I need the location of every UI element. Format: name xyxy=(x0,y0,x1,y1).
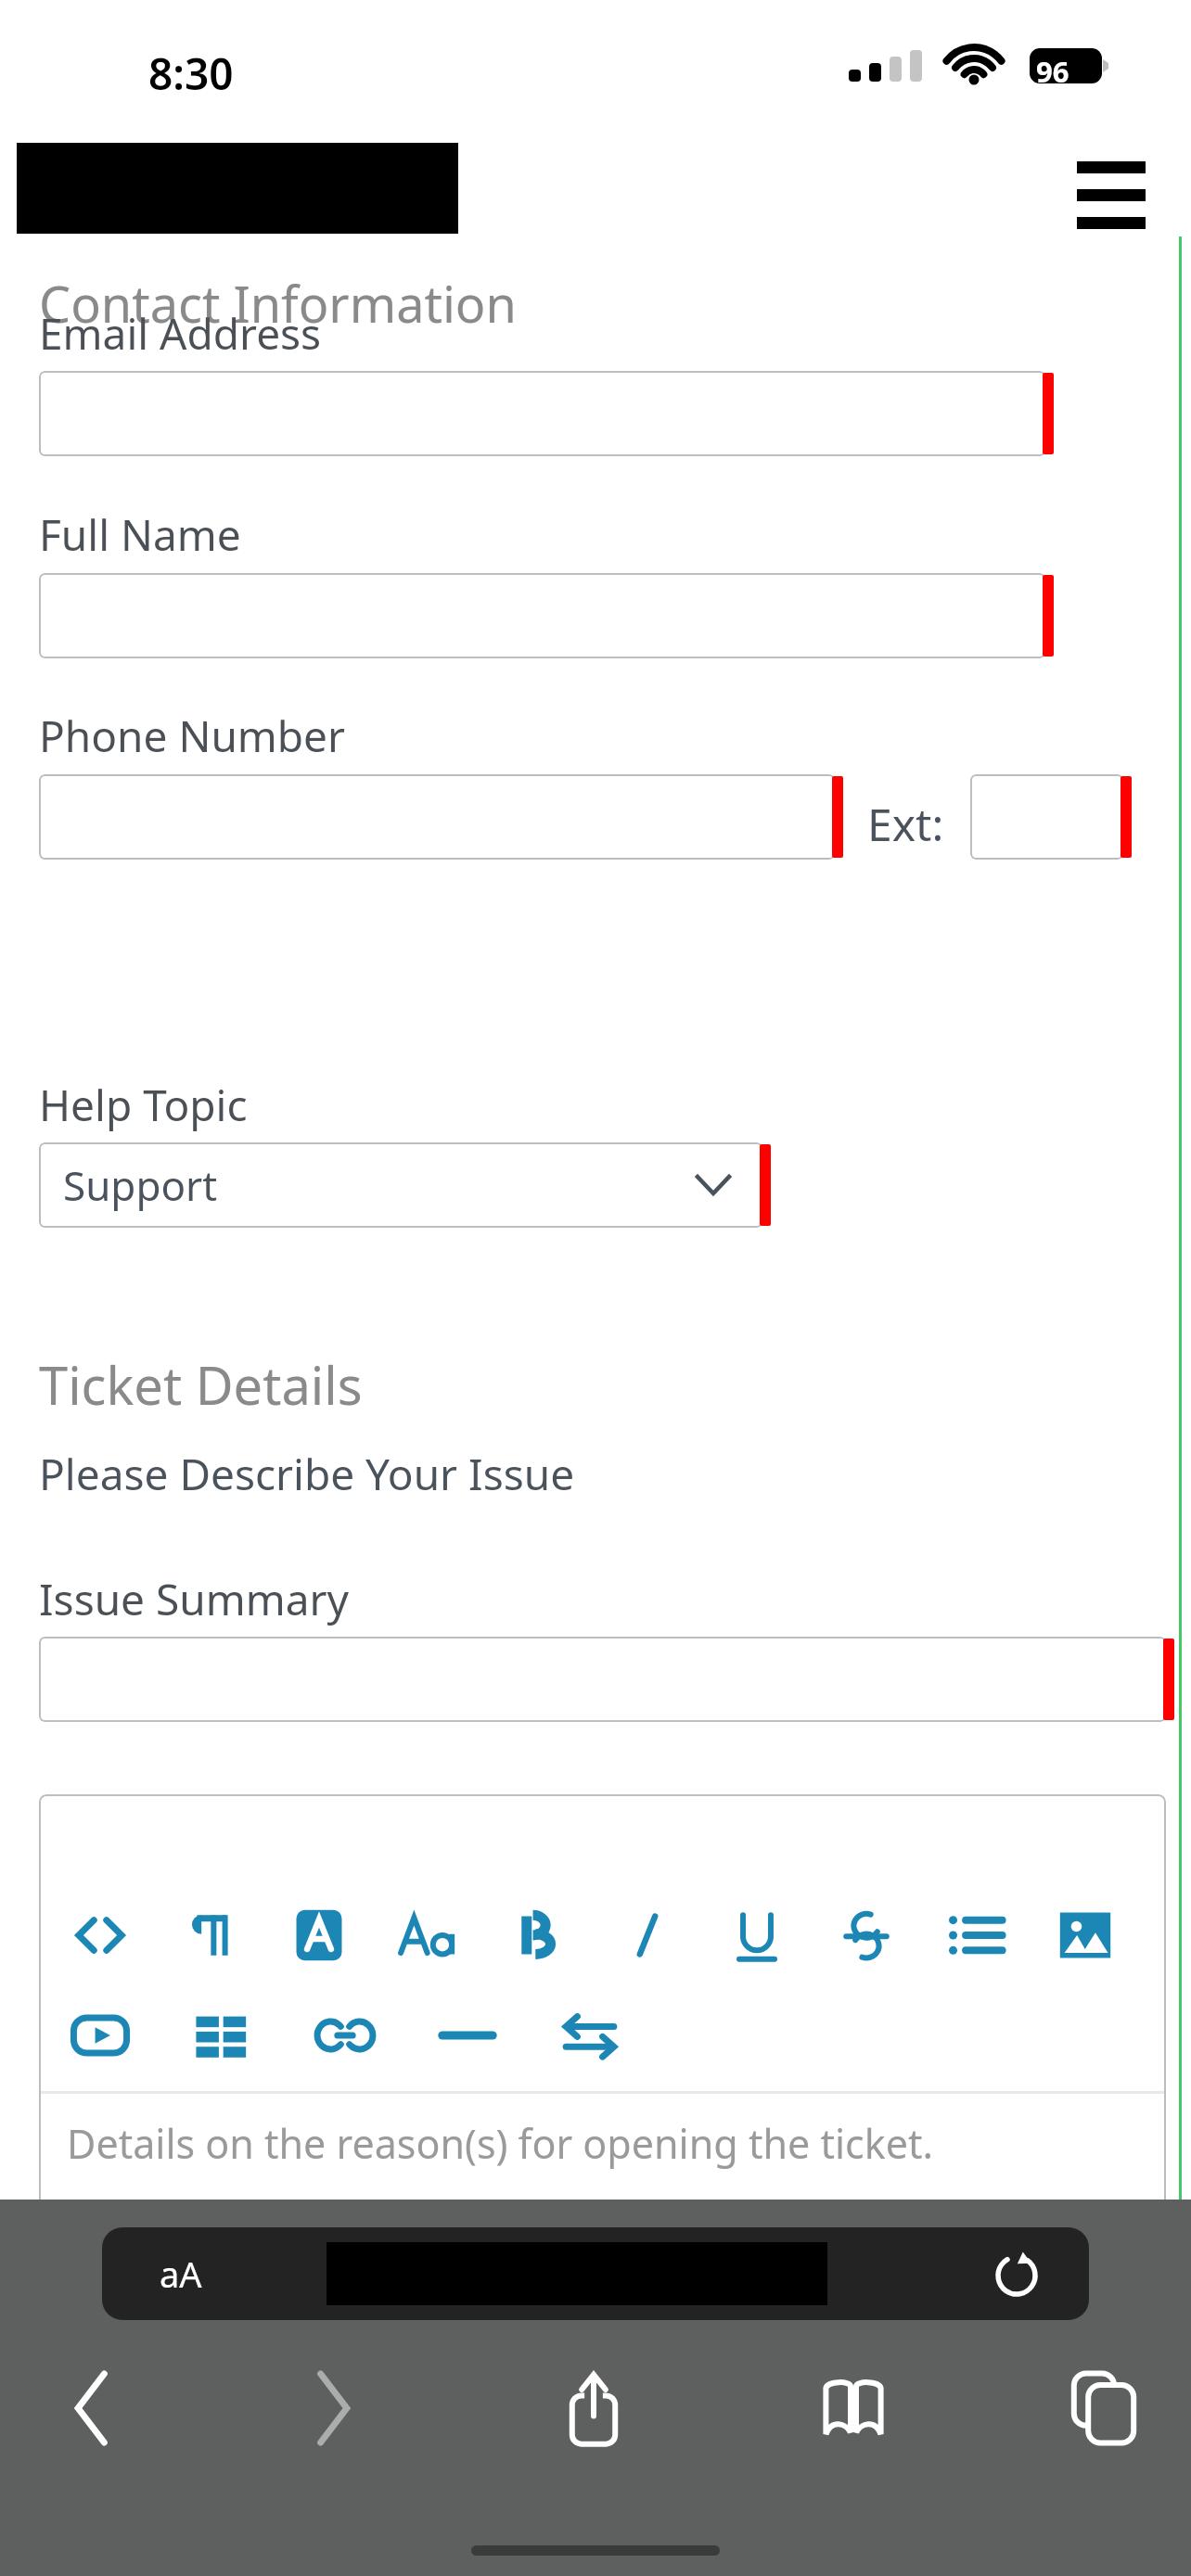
button[interactable] xyxy=(39,774,846,860)
staticText: Details on the reason(s) for opening the… xyxy=(67,2116,933,2171)
button[interactable]: Share xyxy=(519,2348,668,2468)
staticText: Ticket Details xyxy=(39,1349,363,1420)
staticText: 8:30 xyxy=(148,45,234,103)
button[interactable]: Bulleted list xyxy=(931,1891,1020,1980)
staticText: Help Topic xyxy=(39,1076,248,1134)
button[interactable]: Insert image xyxy=(1041,1891,1130,1980)
button[interactable]: Italic xyxy=(603,1891,692,1980)
staticText: Contact Information xyxy=(39,269,517,338)
staticText: Email Address xyxy=(39,304,322,363)
button[interactable]: Details on the reason(s) for opening the… xyxy=(39,2094,1166,2200)
button[interactable]: Undo / redo xyxy=(545,1991,634,2080)
button[interactable]: Back xyxy=(19,2348,167,2468)
button[interactable]: Insert link xyxy=(301,1991,390,2080)
staticText: aA xyxy=(160,2250,202,2298)
button[interactable]: aA xyxy=(102,2227,1089,2320)
staticText: Ext: xyxy=(867,794,944,854)
button[interactable]: Insert table xyxy=(178,1991,267,2080)
button[interactable] xyxy=(39,1637,1177,1722)
staticText: Please Describe Your Issue xyxy=(39,1445,575,1503)
button[interactable]: Forward xyxy=(258,2348,406,2468)
button[interactable]: Text color xyxy=(275,1891,364,1980)
button[interactable]: Menu xyxy=(1057,145,1165,230)
other: Reload xyxy=(989,2246,1044,2302)
button[interactable] xyxy=(39,573,1057,658)
button[interactable]: Bold xyxy=(493,1891,583,1980)
staticText: Phone Number xyxy=(39,707,346,765)
button[interactable]: Tabs xyxy=(1030,2348,1178,2468)
staticText: Support xyxy=(63,1157,218,1213)
button[interactable] xyxy=(39,371,1057,456)
button[interactable]: Insert video xyxy=(56,1991,145,2080)
button[interactable]: Horizontal line xyxy=(423,1991,512,2080)
button[interactable]: Bookmarks xyxy=(779,2348,928,2468)
staticText: Issue Summary xyxy=(39,1570,349,1628)
button[interactable]: Code view xyxy=(56,1891,145,1980)
button[interactable]: Strikethrough xyxy=(822,1891,911,1980)
button[interactable]: Paragraph format xyxy=(165,1891,254,1980)
button[interactable]: Font size xyxy=(384,1891,473,1980)
button[interactable]: Underline xyxy=(712,1891,801,1980)
button[interactable] xyxy=(970,774,1134,860)
staticText: Full Name xyxy=(39,505,241,564)
staticText: 96 xyxy=(1036,52,1069,91)
button[interactable]: Support xyxy=(39,1142,774,1228)
